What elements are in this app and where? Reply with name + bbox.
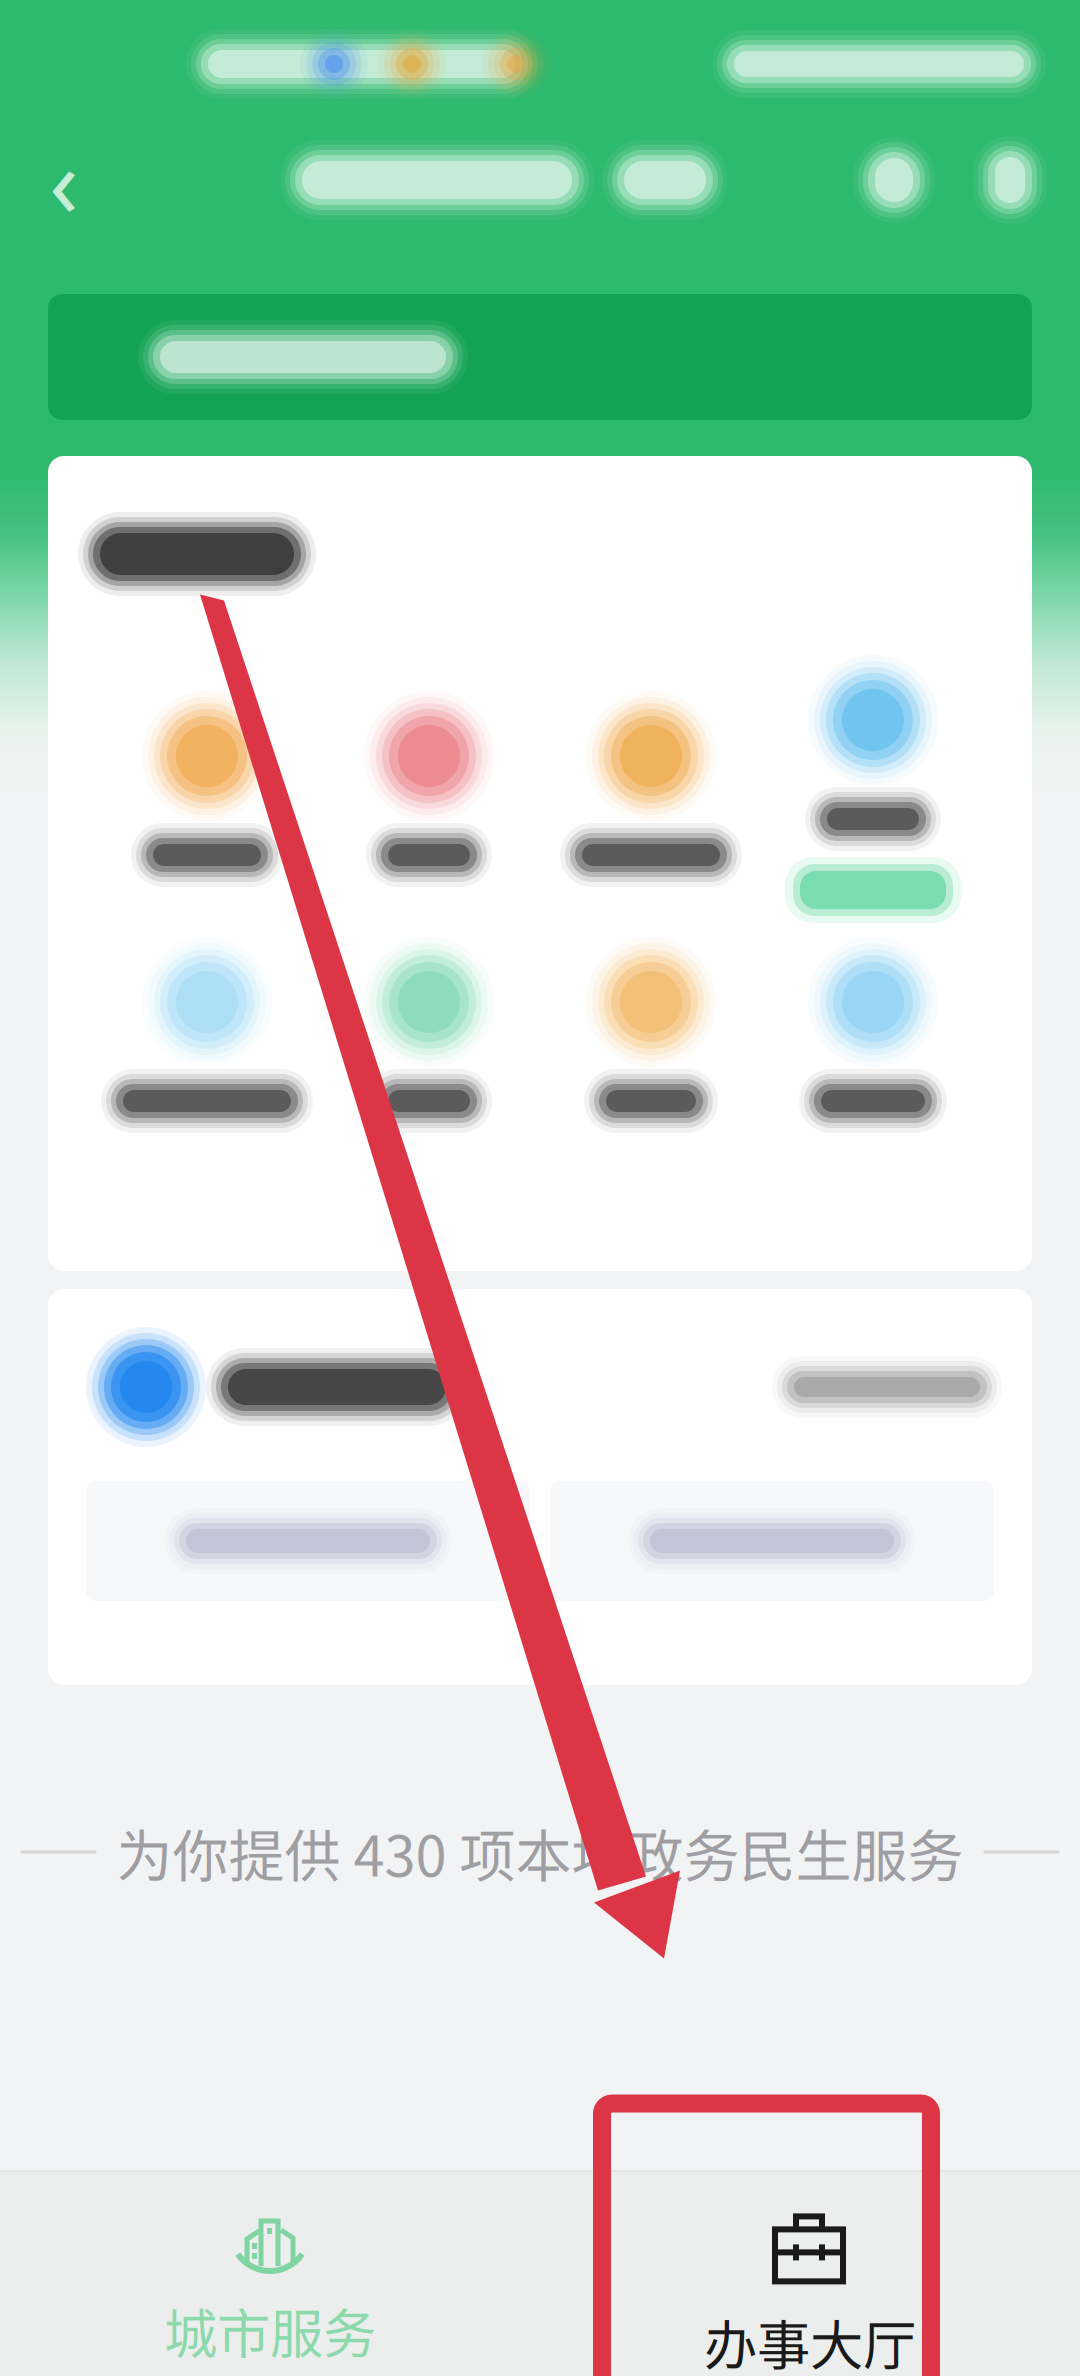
button[interactable]: 服务 <box>540 696 762 882</box>
staticText: 为你提供 430 项本地政务民生服务 <box>116 1811 963 1893</box>
button[interactable]: 服务入口 <box>86 1481 530 1601</box>
button[interactable]: 服务 <box>318 696 540 882</box>
button[interactable]: 服务 <box>96 942 318 1128</box>
button[interactable]: 服务 <box>96 696 318 882</box>
button[interactable]: 服务 <box>540 942 762 1128</box>
button[interactable]: 返回 <box>28 128 100 232</box>
button[interactable]: 服务 <box>762 942 984 1128</box>
button[interactable]: 服务 <box>318 942 540 1128</box>
button[interactable]: 扫一扫 <box>844 128 944 232</box>
button[interactable]: 办事大厅 <box>540 2172 1080 2376</box>
button[interactable]: 我的 <box>962 128 1058 232</box>
button[interactable]: 服务 <box>762 664 984 914</box>
button[interactable]: 搜索 <box>48 294 1032 420</box>
staticText: ‹ <box>49 115 79 245</box>
staticText: 办事大厅 <box>704 2303 916 2376</box>
button[interactable]: 城市服务 <box>0 2172 540 2376</box>
staticText: 城市服务 <box>164 2292 376 2369</box>
button[interactable]: 服务入口 <box>550 1481 994 1601</box>
